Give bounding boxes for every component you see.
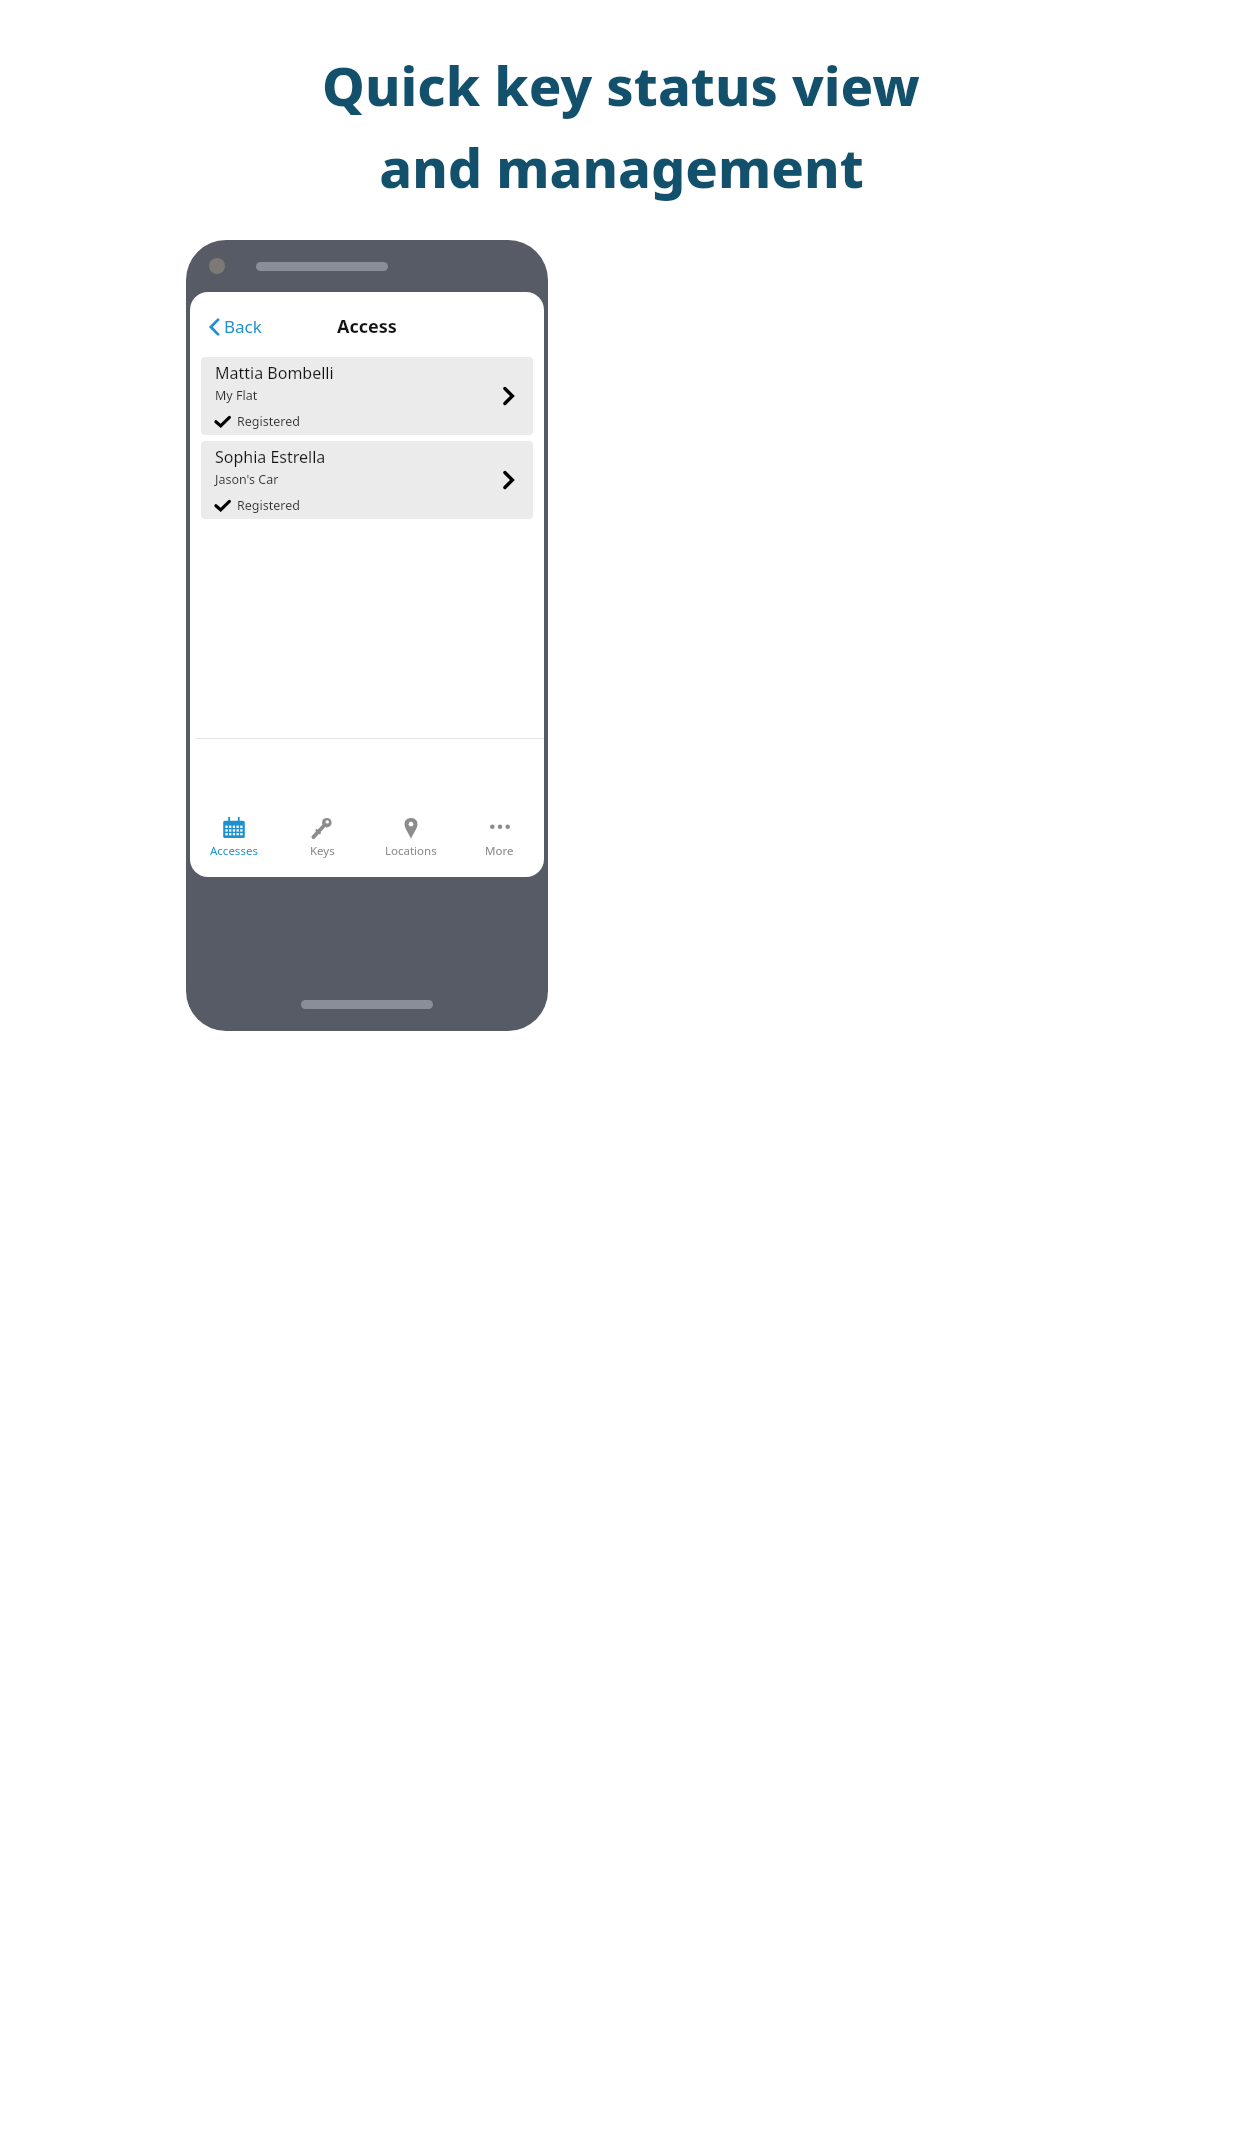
other: Open details: [502, 469, 515, 491]
staticText: Jason's Car: [215, 471, 279, 488]
button[interactable]: More: [455, 812, 544, 863]
staticText: My Flat: [215, 387, 258, 404]
staticText: Access: [337, 314, 397, 339]
staticText: Keys: [310, 843, 335, 859]
other: Open details: [502, 385, 515, 407]
staticText: Quick key status view: [322, 48, 920, 122]
button[interactable]: Accesses: [190, 812, 278, 863]
button[interactable]: Sophia Estrella: [201, 441, 533, 519]
staticText: Mattia Bombelli: [215, 362, 334, 384]
staticText: Sophia Estrella: [215, 446, 326, 468]
staticText: More: [485, 843, 514, 859]
button[interactable]: Locations: [366, 812, 455, 863]
staticText: Registered: [237, 413, 300, 430]
button[interactable]: Keys: [278, 812, 366, 863]
staticText: Registered: [237, 497, 300, 514]
staticText: and management: [379, 130, 864, 204]
button[interactable]: Back: [202, 311, 268, 342]
staticText: Back: [224, 315, 262, 338]
staticText: Locations: [385, 843, 437, 859]
button[interactable]: Mattia Bombelli: [201, 357, 533, 435]
staticText: Accesses: [210, 843, 258, 859]
